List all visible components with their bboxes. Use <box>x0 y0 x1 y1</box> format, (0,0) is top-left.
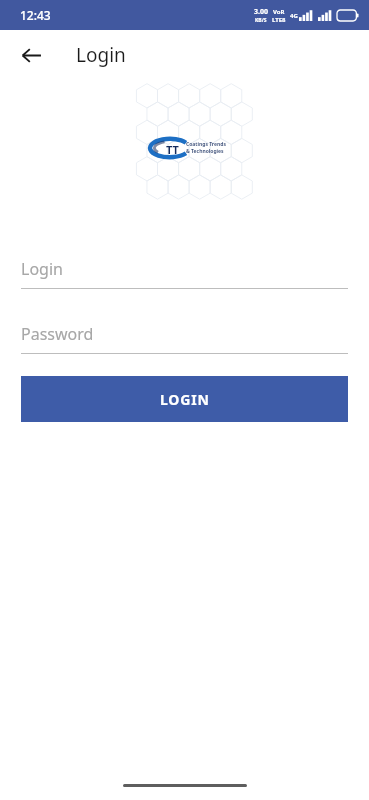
staticText: LOGIN <box>160 390 210 409</box>
staticText: 4G <box>290 12 298 20</box>
staticText: Password <box>21 323 94 345</box>
staticText: VoR <box>273 8 285 16</box>
button[interactable]: Back <box>12 36 50 74</box>
button[interactable]: Login <box>21 258 348 289</box>
staticText: & Technologies <box>186 148 224 155</box>
staticText: 3.00 <box>254 7 268 17</box>
staticText: Coatings Trends <box>186 141 226 148</box>
button[interactable]: Password <box>21 323 348 354</box>
button[interactable]: LOGIN <box>21 376 348 422</box>
staticText: LTE8 <box>272 16 286 24</box>
staticText: TT <box>166 142 179 157</box>
staticText: KB/S <box>255 17 267 24</box>
staticText: 12:43 <box>20 7 51 23</box>
staticText: Login <box>76 42 126 68</box>
staticText: Login <box>21 258 63 280</box>
